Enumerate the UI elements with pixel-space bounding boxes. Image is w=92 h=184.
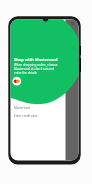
staticText: Mastercard <box>14 106 30 110</box>
staticText: When shopping online, choose Mastercard … <box>14 63 60 75</box>
staticText: Enter credit card <box>14 114 38 118</box>
staticText: Shop with Mastercard <box>14 57 58 62</box>
